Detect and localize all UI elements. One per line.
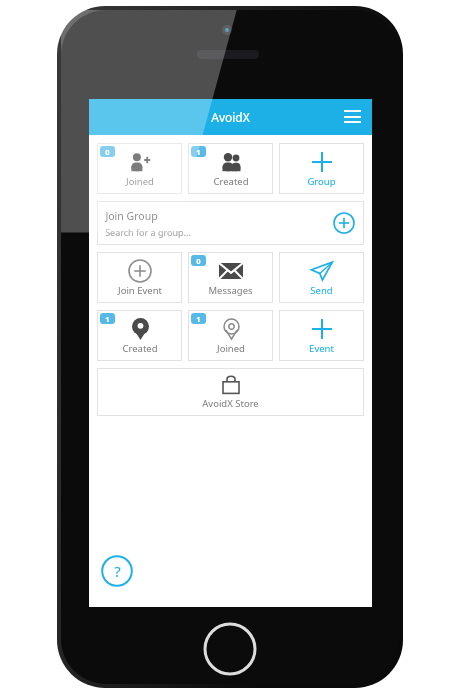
- staticText: 1: [196, 147, 201, 157]
- button[interactable]: Help: [101, 555, 133, 587]
- button[interactable]: Menu: [340, 105, 364, 129]
- button[interactable]: Group: [279, 143, 364, 194]
- staticText: Send: [310, 284, 333, 297]
- button[interactable]: Join Event: [97, 252, 182, 303]
- staticText: 1: [105, 314, 110, 324]
- staticText: Join Group: [105, 209, 158, 223]
- staticText: AvoidX Store: [202, 397, 259, 410]
- staticText: Event: [309, 342, 334, 355]
- button[interactable]: Join Group: [97, 201, 364, 245]
- button[interactable]: AvoidX Store: [97, 368, 364, 416]
- staticText: Joined: [217, 342, 245, 355]
- staticText: Messages: [208, 284, 253, 297]
- button[interactable]: Created: [188, 143, 273, 194]
- button[interactable]: Join group: [333, 212, 355, 234]
- staticText: Join Event: [118, 284, 162, 297]
- staticText: AvoidX: [211, 109, 250, 125]
- staticText: ?: [114, 561, 121, 581]
- staticText: 0: [105, 147, 110, 157]
- button[interactable]: Joined: [97, 143, 182, 194]
- staticText: Group: [307, 175, 336, 188]
- staticText: Joined: [126, 175, 154, 188]
- staticText: Search for a group...: [105, 226, 191, 238]
- button[interactable]: Created: [97, 310, 182, 361]
- staticText: 0: [196, 256, 201, 266]
- staticText: Created: [122, 342, 158, 355]
- button[interactable]: Event: [279, 310, 364, 361]
- button[interactable]: Messages: [188, 252, 273, 303]
- button[interactable]: Send: [279, 252, 364, 303]
- staticText: Created: [213, 175, 249, 188]
- staticText: 1: [196, 314, 201, 324]
- button[interactable]: Joined: [188, 310, 273, 361]
